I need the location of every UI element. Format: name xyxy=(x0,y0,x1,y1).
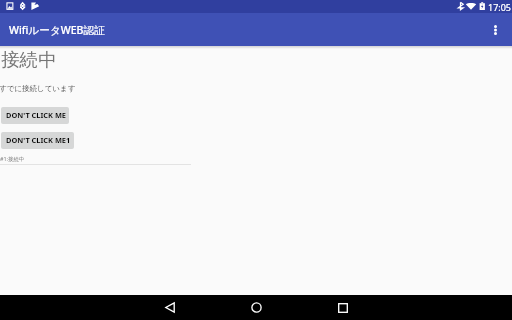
staticText: 17:05 xyxy=(488,1,512,13)
button[interactable]: DON'T CLICK ME xyxy=(1,107,69,124)
staticText: DON'T CLICK ME1 xyxy=(6,135,71,145)
button[interactable]: Back xyxy=(142,295,198,320)
staticText: すでに接続しています xyxy=(0,84,76,93)
button[interactable]: Recent apps xyxy=(315,295,371,320)
staticText: 接続中 xyxy=(1,48,57,71)
staticText: #1:接続中 xyxy=(0,155,25,162)
staticText: DON'T CLICK ME xyxy=(6,110,66,120)
staticText: WifiルータWEB認証 xyxy=(9,23,105,37)
button[interactable]: More options xyxy=(480,15,510,45)
button[interactable]: DON'T CLICK ME1 xyxy=(1,132,74,149)
button[interactable]: Home xyxy=(228,295,284,320)
